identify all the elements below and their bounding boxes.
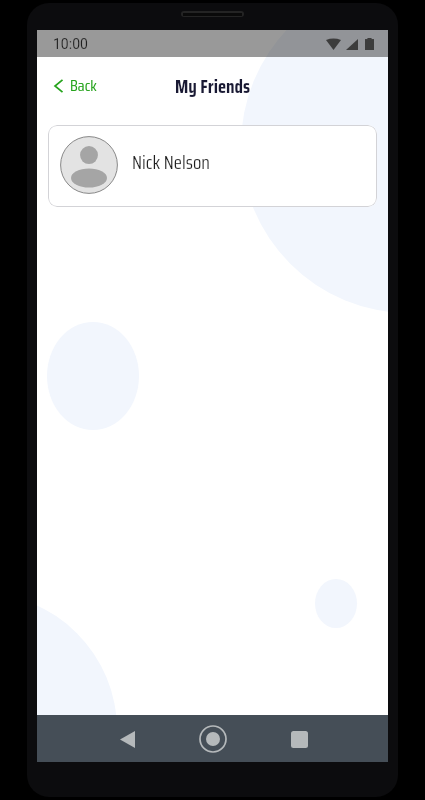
button[interactable]: Back (37, 66, 107, 107)
button[interactable]: Back (104, 716, 150, 762)
staticText: Back (70, 73, 97, 98)
staticText: Nick Nelson (132, 147, 210, 177)
staticText: My Friends (175, 71, 251, 101)
button[interactable]: Home (190, 716, 236, 762)
staticText: 10:00 (53, 36, 88, 52)
button[interactable]: Nick Nelson (48, 125, 377, 207)
button[interactable]: Recent apps (276, 716, 322, 762)
